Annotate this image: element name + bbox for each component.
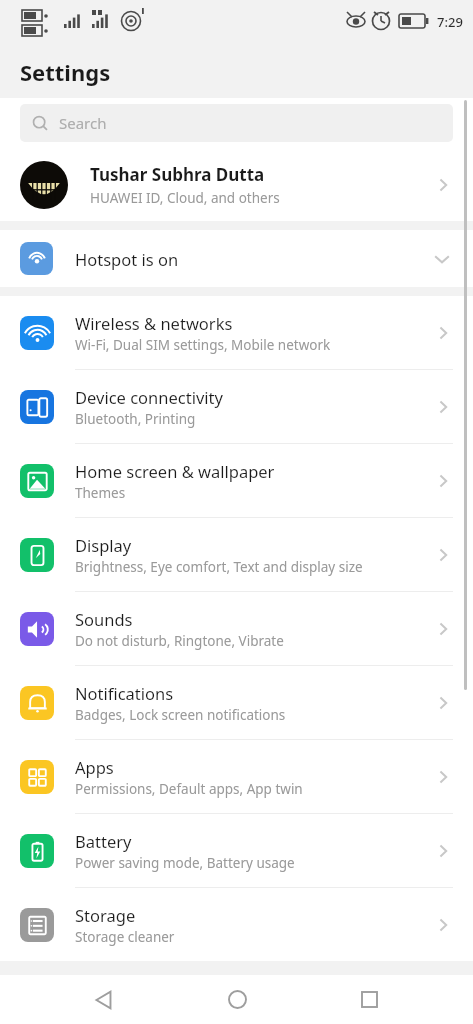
staticText: HUAWEI ID, Cloud, and others (90, 189, 280, 207)
staticText: Display (75, 534, 132, 556)
button[interactable]: Notifications (0, 666, 473, 739)
button[interactable]: Home screen & wallpaper (0, 444, 473, 517)
staticText: Battery (75, 830, 132, 852)
staticText: Badges, Lock screen notifications (75, 706, 286, 724)
button[interactable]: Tushar Subhra Dutta (0, 148, 473, 221)
staticText: Wi-Fi, Dual SIM settings, Mobile network (75, 336, 331, 354)
button[interactable]: Storage (0, 888, 473, 961)
staticText: Sounds (75, 608, 133, 630)
staticText: Bluetooth, Printing (75, 410, 196, 428)
staticText: Wireless & networks (75, 312, 233, 334)
button[interactable]: Hotspot is on (0, 230, 473, 287)
staticText: Home screen & wallpaper (75, 460, 275, 482)
button[interactable]: Battery (0, 814, 473, 887)
staticText: 7:29 (437, 13, 463, 31)
button[interactable]: Apps (0, 740, 473, 813)
button[interactable]: Recent apps (341, 975, 397, 1024)
button[interactable]: Device connectivity (0, 370, 473, 443)
staticText: Brightness, Eye comfort, Text and displa… (75, 558, 363, 576)
button[interactable]: Back (76, 975, 132, 1024)
button[interactable]: Home (209, 975, 265, 1024)
staticText: Do not disturb, Ringtone, Vibrate (75, 632, 284, 650)
staticText: Storage cleaner (75, 928, 175, 946)
button[interactable]: Wireless & networks (0, 296, 473, 369)
staticText: Apps (75, 756, 114, 778)
staticText: Tushar Subhra Dutta (90, 163, 265, 186)
staticText: Settings (20, 57, 111, 87)
staticText: Permissions, Default apps, App twin (75, 780, 303, 798)
button[interactable]: Display (0, 518, 473, 591)
staticText: Notifications (75, 682, 174, 704)
staticText: Device connectivity (75, 386, 223, 408)
staticText: Storage (75, 904, 136, 926)
button[interactable]: Search (20, 104, 453, 142)
staticText: Search (59, 113, 107, 133)
button[interactable]: Sounds (0, 592, 473, 665)
staticText: Themes (75, 484, 126, 502)
staticText: Power saving mode, Battery usage (75, 854, 295, 872)
staticText: Hotspot is on (75, 248, 433, 270)
